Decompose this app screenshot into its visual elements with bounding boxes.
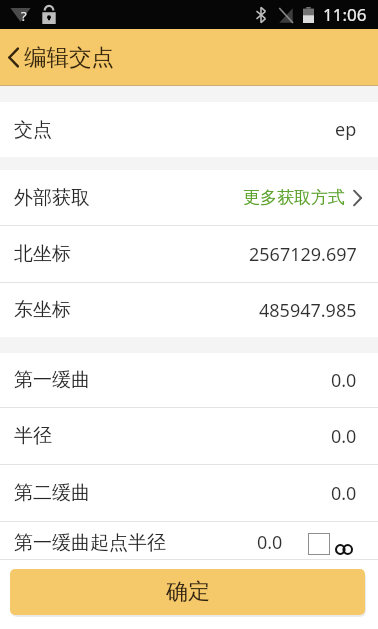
staticText: 0.0 [331,368,357,393]
button[interactable]: 半径 [0,408,378,464]
staticText: 北坐标 [14,242,71,266]
staticText: 0.0 [331,481,357,506]
staticText: 半径 [14,424,52,448]
staticText: 第二缓曲 [14,481,90,505]
staticText: 外部获取 [14,186,90,210]
staticText: 0.0 [257,530,283,555]
staticText: 2567129.697 [249,242,357,267]
button[interactable]: 北坐标 [0,226,378,282]
button[interactable]: 东坐标 [0,283,378,337]
staticText: ? [21,7,27,25]
staticText: 更多获取方式 [243,187,345,208]
button[interactable]: 交点 [0,102,378,157]
staticText: 485947.985 [259,298,357,323]
button[interactable]: 确定 [10,569,365,615]
button[interactable]: 第一缓曲 [0,353,378,407]
button[interactable]: Infinite [308,533,330,555]
button[interactable]: Back [0,34,26,80]
staticText: 编辑交点 [24,43,114,71]
staticText: 第一缓曲 [14,368,90,392]
button[interactable]: 第二缓曲 [0,465,378,521]
staticText: ep [335,117,357,142]
staticText: 东坐标 [14,298,71,322]
button[interactable]: 外部获取 [0,170,378,225]
staticText: 第一缓曲起点半径 [14,531,166,555]
staticText: 交点 [14,118,52,142]
button[interactable]: 第一缓曲起点半径 [0,522,378,559]
staticText: 确定 [166,578,210,606]
staticText: 11:06 [323,3,367,26]
staticText: 0.0 [331,424,357,449]
